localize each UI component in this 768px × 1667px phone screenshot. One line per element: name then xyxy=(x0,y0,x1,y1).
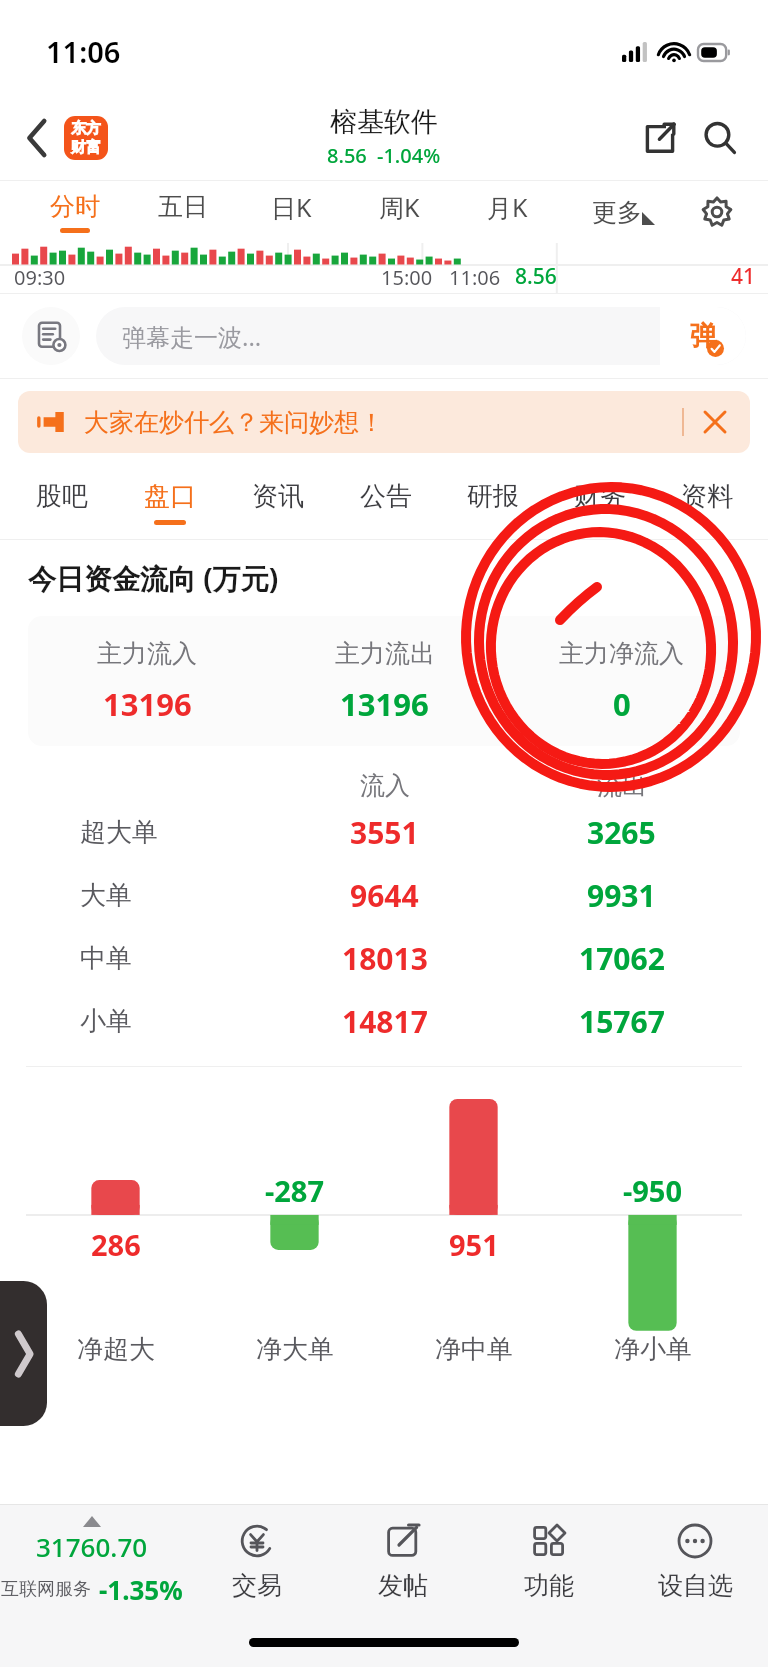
staticText: 盘口 xyxy=(144,480,196,513)
button[interactable]: 弹幕走一波... xyxy=(96,307,746,365)
button[interactable]: 资料 xyxy=(653,465,760,539)
staticText: 14817 xyxy=(342,1001,428,1042)
staticText: 净大单 xyxy=(256,1333,334,1366)
button[interactable]: 大家在炒什么？来问妙想！ xyxy=(18,391,750,453)
staticText: 功能 xyxy=(524,1570,574,1601)
staticText: 15:00 xyxy=(381,264,433,291)
staticText: 主力流入 xyxy=(97,638,197,669)
staticText: 周K xyxy=(379,190,420,224)
staticText: 0 xyxy=(613,683,631,725)
staticText: 286 xyxy=(91,1225,141,1264)
staticText: 五日 xyxy=(158,191,208,222)
staticText: 13196 xyxy=(340,683,429,725)
staticText: 弹幕走一波... xyxy=(122,320,262,353)
staticText: 月K xyxy=(487,190,528,224)
button[interactable]: 小单 xyxy=(28,990,740,1053)
staticText: 951 xyxy=(449,1225,499,1264)
staticText: -1.35% xyxy=(99,1572,183,1607)
staticText: 41 xyxy=(731,262,756,291)
staticText: -1.04% xyxy=(377,142,441,169)
staticText: 流入 xyxy=(360,770,410,801)
staticText: 净小单 xyxy=(614,1333,692,1366)
staticText: 财富 xyxy=(71,138,101,157)
button[interactable]: 股吧 xyxy=(8,465,116,539)
button[interactable]: East Money logo xyxy=(64,116,108,160)
button[interactable]: Open side panel xyxy=(0,1281,47,1426)
staticText: 大单 xyxy=(80,879,132,912)
button[interactable]: 设自选 xyxy=(622,1505,768,1617)
staticText: 8.56 xyxy=(515,262,557,291)
staticText: 东方 xyxy=(71,119,101,138)
button[interactable]: 分时 xyxy=(20,181,129,243)
staticText: 9931 xyxy=(587,875,656,916)
staticText: 9644 xyxy=(350,875,419,916)
button[interactable]: Share xyxy=(632,110,688,166)
button[interactable]: 31760.70 xyxy=(0,1516,184,1607)
staticText: 中单 xyxy=(80,942,132,975)
button[interactable]: 周K xyxy=(345,181,453,243)
button[interactable]: 月K xyxy=(453,181,561,243)
staticText: 11:06 xyxy=(449,264,501,291)
button[interactable]: 功能 xyxy=(476,1505,622,1617)
button[interactable]: 研报 xyxy=(439,465,546,539)
staticText: 互联网服务 xyxy=(1,1578,91,1601)
staticText: 流出 xyxy=(597,770,647,801)
staticText: 18013 xyxy=(342,938,428,979)
staticText: 榕基软件 xyxy=(330,105,438,139)
button[interactable]: Close banner xyxy=(700,407,730,437)
button[interactable]: 中单 xyxy=(28,927,740,990)
button[interactable]: 资讯 xyxy=(224,465,332,539)
button[interactable]: 主力流入 xyxy=(28,616,740,746)
staticText: 主力净流入 xyxy=(559,638,684,669)
button[interactable]: 大单 xyxy=(28,864,740,927)
staticText: 设自选 xyxy=(658,1570,733,1601)
staticText: 17062 xyxy=(579,938,665,979)
staticText: 分时 xyxy=(50,191,100,222)
staticText: 股吧 xyxy=(36,480,88,513)
button[interactable]: Chart settings xyxy=(686,181,748,243)
button[interactable]: 发帖 xyxy=(330,1505,476,1617)
staticText: 今日资金流向 (万元) xyxy=(28,559,279,597)
staticText: 财务 xyxy=(574,480,626,513)
button[interactable]: 日K xyxy=(237,181,345,243)
staticText: 净超大 xyxy=(77,1333,155,1366)
staticText: 13196 xyxy=(103,683,192,725)
staticText: 日K xyxy=(271,190,312,224)
staticText: -950 xyxy=(623,1171,683,1210)
button[interactable]: 更多 xyxy=(561,181,686,243)
staticText: 更多 xyxy=(592,197,642,228)
staticText: 主力流出 xyxy=(335,638,435,669)
staticText: 3551 xyxy=(350,812,419,853)
staticText: 超大单 xyxy=(80,816,158,849)
staticText: 弹 xyxy=(690,319,717,353)
button[interactable]: Search xyxy=(692,110,748,166)
staticText: 公告 xyxy=(360,480,412,513)
staticText: 小单 xyxy=(80,1005,132,1038)
staticText: 资讯 xyxy=(252,480,304,513)
staticText: 研报 xyxy=(467,480,519,513)
button[interactable]: 财务 xyxy=(546,465,653,539)
button[interactable]: 交易 xyxy=(184,1505,330,1617)
staticText: 大家在炒什么？来问妙想！ xyxy=(84,407,384,438)
button[interactable]: 盘口 xyxy=(116,465,224,539)
button[interactable]: 超大单 xyxy=(28,801,740,864)
staticText: 11:06 xyxy=(46,32,121,71)
button[interactable]: Back xyxy=(14,115,60,161)
staticText: -287 xyxy=(265,1171,325,1210)
staticText: 09:30 xyxy=(14,264,66,291)
button[interactable]: Send danmu xyxy=(660,307,746,365)
staticText: 8.56 xyxy=(327,142,367,169)
staticText: 15767 xyxy=(579,1001,665,1042)
staticText: 交易 xyxy=(232,1570,282,1601)
staticText: 3265 xyxy=(587,812,656,853)
button[interactable]: Message list xyxy=(22,307,80,365)
staticText: 发帖 xyxy=(378,1570,428,1601)
button[interactable]: 五日 xyxy=(129,181,237,243)
staticText: 资料 xyxy=(681,480,733,513)
button[interactable]: 公告 xyxy=(332,465,439,539)
staticText: 净中单 xyxy=(435,1333,513,1366)
staticText: 31760.70 xyxy=(36,1529,148,1564)
